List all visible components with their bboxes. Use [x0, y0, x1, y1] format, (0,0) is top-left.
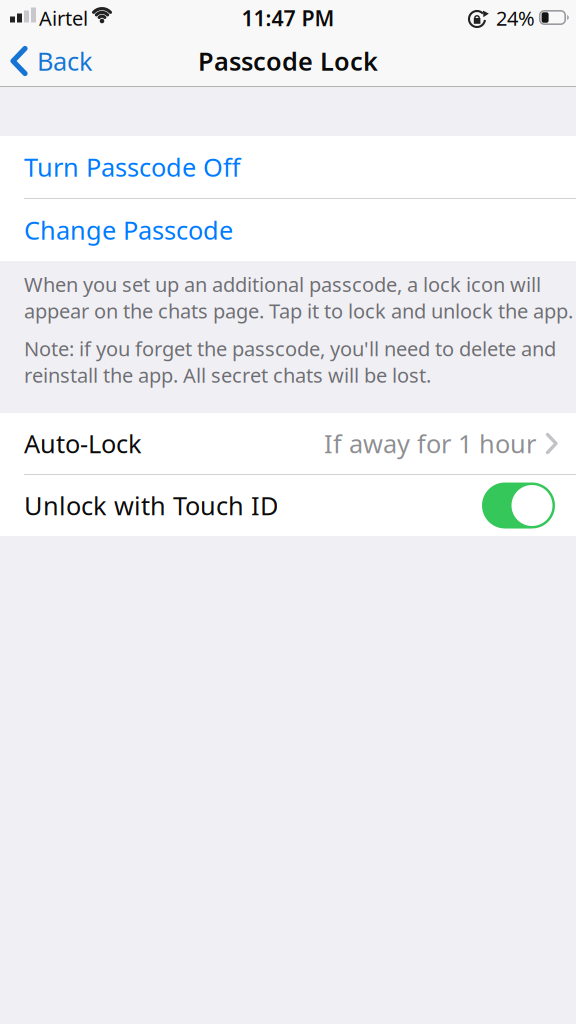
staticText: Passcode Lock [198, 44, 378, 78]
button[interactable]: Change Passcode [0, 199, 576, 261]
staticText: Airtel [39, 5, 88, 31]
staticText: Unlock with Touch ID [24, 489, 278, 522]
staticText: Auto-Lock [24, 427, 142, 460]
button[interactable]: Back [0, 44, 101, 78]
staticText: If away for 1 hour [324, 427, 536, 460]
staticText: Turn Passcode Off [24, 150, 240, 184]
staticText: Change Passcode [24, 213, 233, 247]
staticText: Back [37, 44, 93, 78]
staticText: 24% [496, 5, 535, 31]
button[interactable]: Turn Passcode Off [0, 136, 576, 198]
staticText: 11:47 PM [241, 4, 334, 32]
staticText: When you set up an additional passcode, … [24, 271, 573, 324]
button[interactable]: Auto-Lock [0, 413, 576, 474]
staticText: Note: if you forget the passcode, you'll… [24, 335, 556, 388]
button[interactable]: Unlock with Touch ID [482, 482, 555, 528]
